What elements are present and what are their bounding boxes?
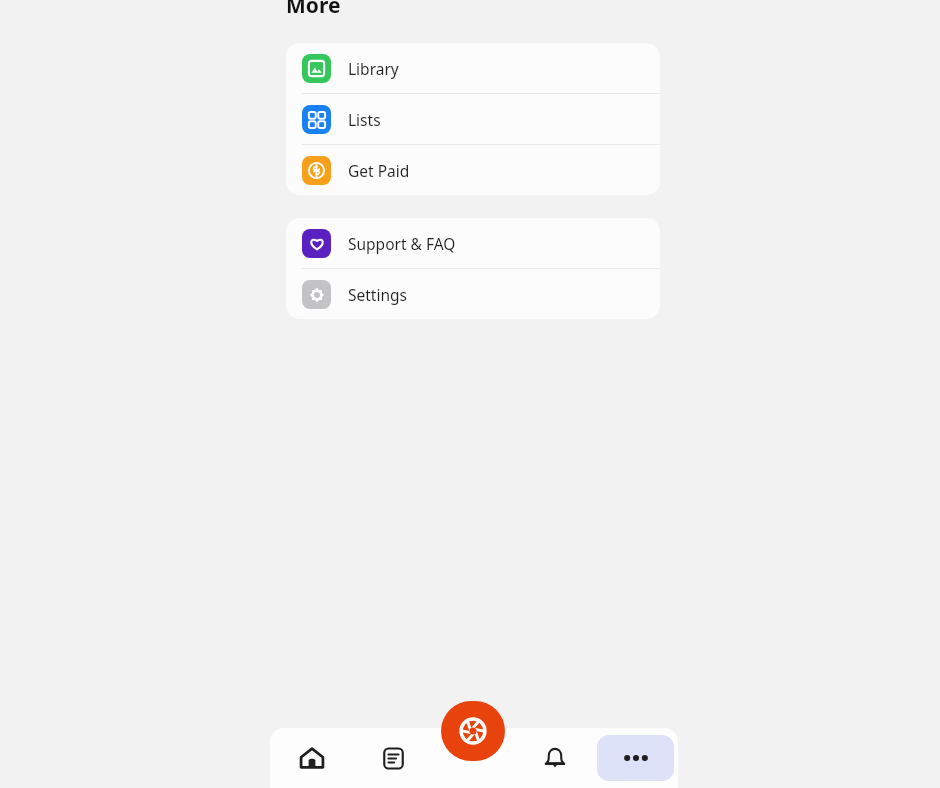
button[interactable]: Home	[290, 735, 334, 781]
staticText: Get Paid	[348, 160, 410, 181]
button[interactable]: Library	[286, 43, 660, 93]
staticText: Settings	[348, 284, 407, 305]
button[interactable]: Documents	[371, 735, 415, 781]
button[interactable]: Get Paid	[286, 145, 660, 195]
button[interactable]: Capture	[441, 701, 505, 761]
staticText: Support & FAQ	[348, 233, 456, 254]
button[interactable]: Settings	[286, 269, 660, 319]
staticText: Lists	[348, 109, 381, 130]
button[interactable]: Notifications	[533, 735, 577, 781]
button[interactable]: Support & FAQ	[286, 218, 660, 268]
button[interactable]: Lists	[286, 94, 660, 144]
staticText: Library	[348, 58, 399, 79]
staticText: More	[286, 0, 341, 20]
button[interactable]: More	[597, 735, 674, 781]
